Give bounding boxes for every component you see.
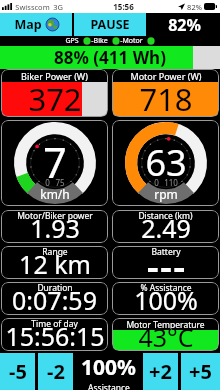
staticText: 7: [43, 134, 67, 190]
staticText: 0:07:59: [12, 283, 97, 315]
button[interactable]: -2: [38, 353, 73, 390]
staticText: 100%: [81, 353, 136, 382]
button[interactable]: Biker Power (W): [1, 69, 108, 117]
button[interactable]: Map: [0, 13, 72, 36]
button[interactable]: 63: [112, 120, 219, 206]
button[interactable]: 100%: [76, 353, 140, 390]
staticText: 75: [55, 177, 65, 188]
button[interactable]: Motor Power (W): [112, 69, 219, 117]
staticText: 372: [28, 78, 82, 117]
staticText: -2: [47, 358, 65, 385]
staticText: rpm: [154, 186, 178, 202]
staticText: Battery: [151, 246, 181, 258]
button[interactable]: Duration: [1, 282, 108, 315]
staticText: 1.93: [30, 211, 80, 243]
button[interactable]: 82%: [148, 13, 220, 36]
staticText: Swisscom: [15, 2, 50, 12]
staticText: Motor Power (W): [130, 70, 202, 82]
staticText: 82%: [187, 2, 202, 12]
staticText: Assistance: [88, 382, 130, 390]
button[interactable]: 7: [1, 120, 108, 206]
staticText: -5: [9, 358, 27, 385]
staticText: -Motor: [120, 36, 143, 46]
staticText: 43°C: [138, 320, 194, 351]
staticText: % Assistance: [140, 282, 192, 294]
staticText: GPS: [65, 36, 79, 46]
button[interactable]: -5: [0, 353, 35, 390]
staticText: 88% (411 Wh): [54, 46, 166, 69]
staticText: km/h: [40, 186, 70, 202]
button[interactable]: Motor Temperature: [112, 318, 219, 351]
staticText: -Bike: [91, 36, 108, 46]
staticText: 100%: [134, 283, 198, 315]
button[interactable]: % Assistance: [112, 282, 219, 315]
button[interactable]: Motor/Biker power: [1, 210, 108, 243]
button[interactable]: PAUSE: [74, 13, 146, 36]
staticText: 2.49: [141, 211, 191, 243]
staticText: Distance (km): [138, 210, 193, 222]
staticText: Biker Power (W): [21, 70, 88, 82]
staticText: 12 km: [19, 247, 91, 279]
staticText: 3G: [53, 2, 63, 12]
staticText: 15:56:15: [5, 319, 105, 351]
staticText: 15:56: [113, 1, 134, 12]
staticText: 0: [45, 177, 50, 188]
button[interactable]: +5: [181, 353, 220, 390]
staticText: +5: [189, 358, 212, 385]
staticText: Motor/Biker power: [17, 210, 93, 222]
staticText: 0: [154, 177, 159, 188]
staticText: 63: [145, 138, 187, 187]
staticText: 110: [164, 177, 178, 188]
button[interactable]: Distance (km): [112, 210, 219, 243]
button[interactable]: Time of day: [1, 318, 108, 351]
button[interactable]: +2: [143, 353, 178, 390]
staticText: Duration: [37, 282, 73, 294]
staticText: 718: [139, 78, 193, 117]
button[interactable]: Range: [1, 246, 108, 279]
staticText: +2: [149, 358, 172, 385]
staticText: Map: [14, 16, 42, 33]
staticText: Motor Temperature: [126, 319, 205, 331]
staticText: Time of day: [31, 318, 78, 330]
staticText: Range: [42, 246, 68, 258]
staticText: 82%: [168, 14, 201, 36]
staticText: PAUSE: [90, 16, 130, 33]
button[interactable]: Battery: [112, 246, 219, 279]
